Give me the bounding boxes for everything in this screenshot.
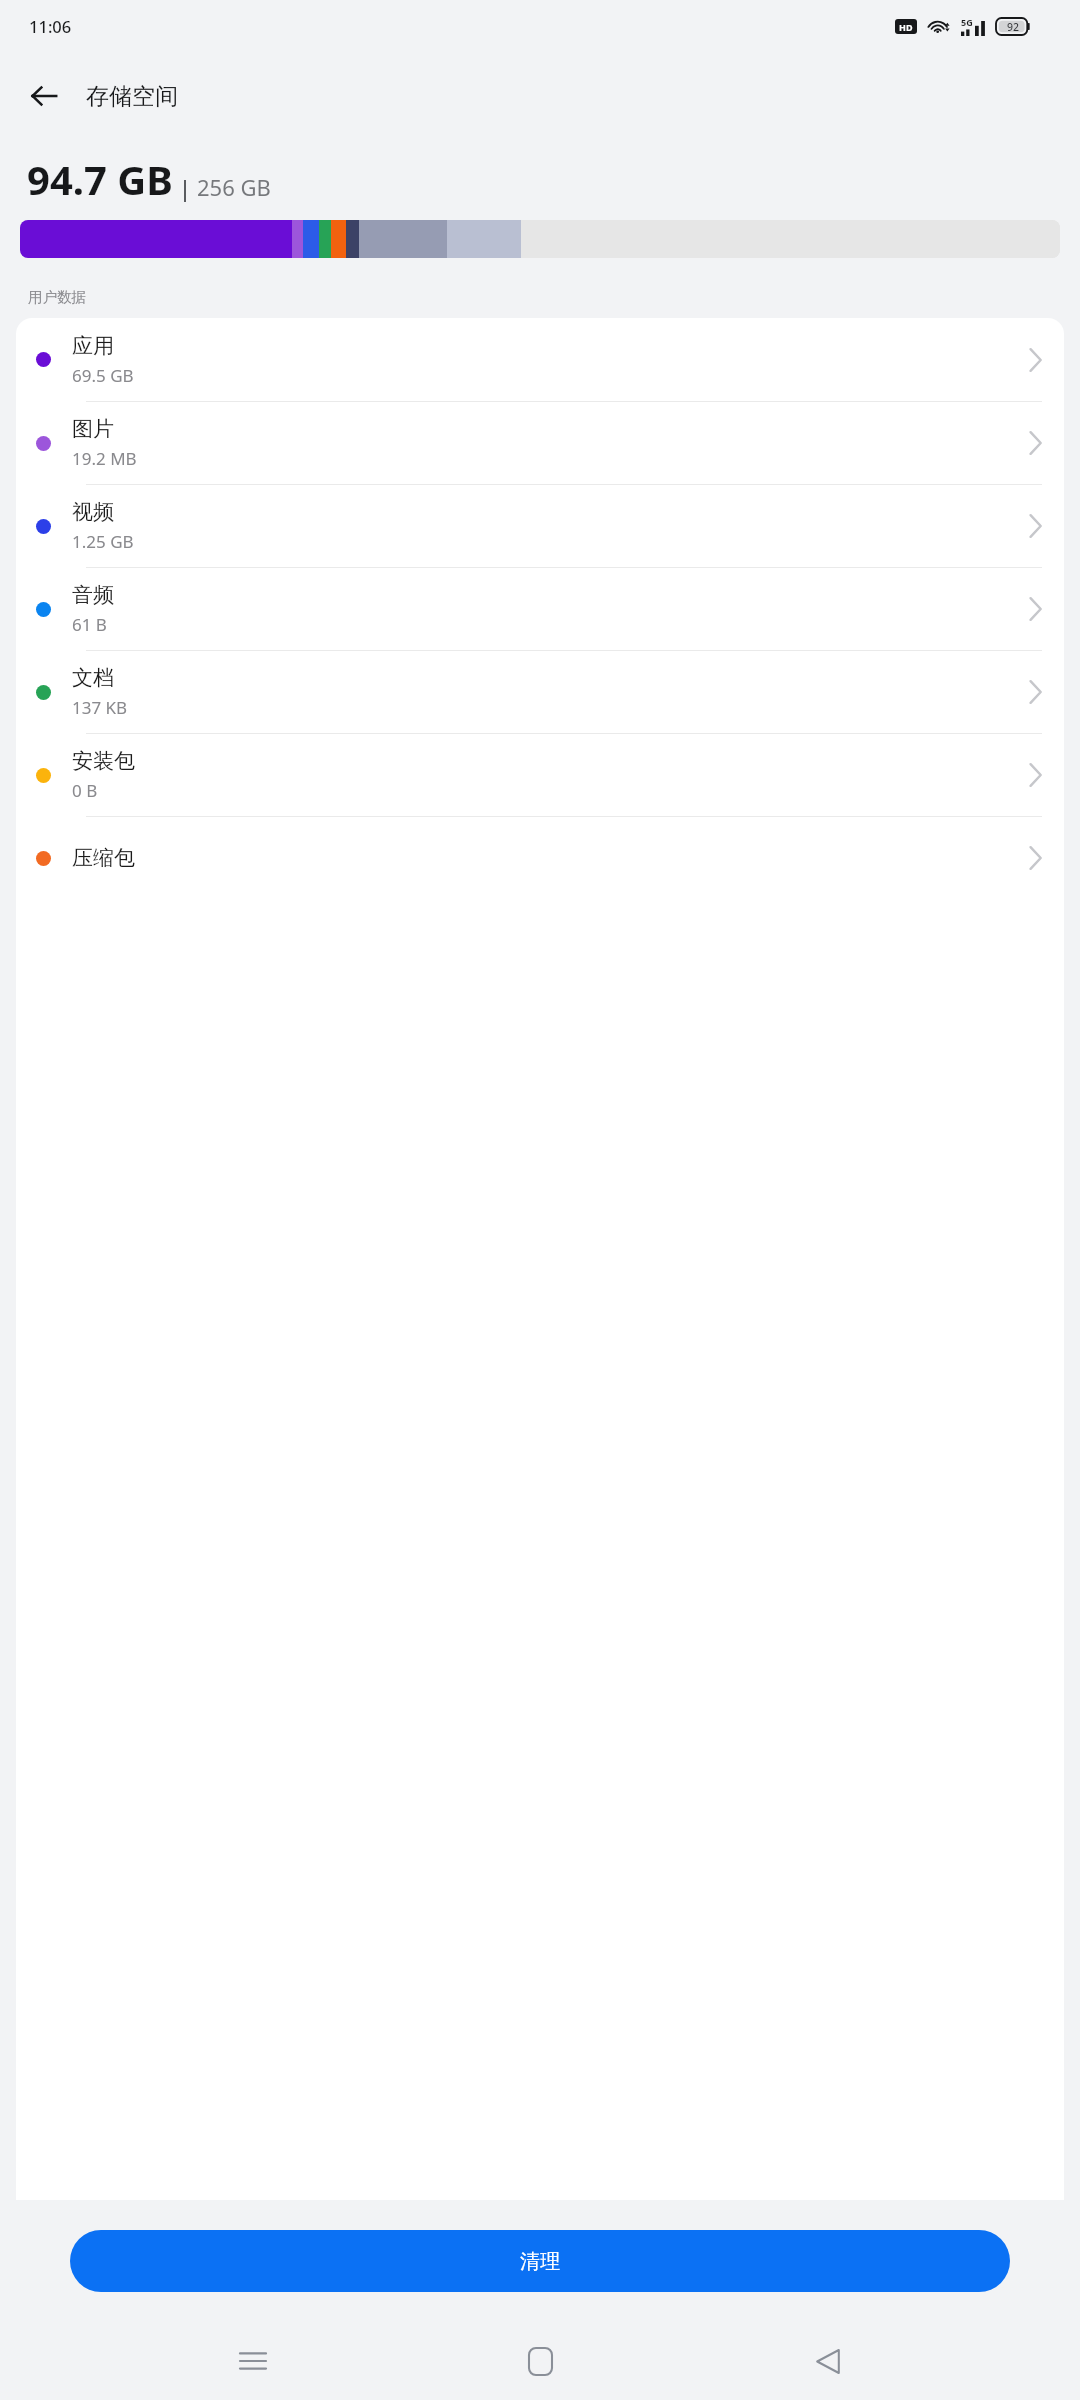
staticText: 应用 [72, 333, 114, 359]
staticText: 92 [1007, 20, 1020, 34]
button[interactable]: Home [505, 2326, 575, 2396]
staticText: 图片 [72, 416, 114, 442]
button[interactable]: Back [793, 2326, 863, 2396]
staticText: 用户数据 [28, 288, 86, 306]
staticText: 256 GB [197, 172, 271, 202]
button[interactable]: 安装包 [16, 734, 1064, 816]
staticText: 压缩包 [72, 845, 135, 871]
staticText: 5G [961, 16, 973, 28]
staticText: 19.2 MB [72, 447, 137, 470]
staticText: 11:06 [29, 15, 72, 37]
staticText: 安装包 [72, 748, 135, 774]
button[interactable]: Recent apps [218, 2326, 288, 2396]
staticText: 存储空间 [86, 82, 178, 111]
staticText: 视频 [72, 499, 114, 525]
staticText: 137 KB [72, 696, 128, 719]
staticText: HD [899, 21, 913, 33]
button[interactable]: Back [16, 68, 72, 124]
button[interactable]: 图片 [16, 402, 1064, 484]
button[interactable]: 压缩包 [16, 817, 1064, 899]
staticText: 音频 [72, 582, 114, 608]
staticText: 0 B [72, 779, 98, 802]
staticText: 61 B [72, 613, 107, 636]
button[interactable]: 清理 [70, 2230, 1010, 2292]
staticText: 69.5 GB [72, 364, 134, 387]
staticText: 94.7 GB [27, 152, 173, 206]
button[interactable]: 音频 [16, 568, 1064, 650]
staticText: 清理 [520, 2249, 560, 2274]
button[interactable]: 文档 [16, 651, 1064, 733]
staticText: 文档 [72, 665, 114, 691]
button[interactable]: 视频 [16, 485, 1064, 567]
button[interactable]: 应用 [16, 318, 1064, 401]
staticText: 1.25 GB [72, 530, 134, 553]
